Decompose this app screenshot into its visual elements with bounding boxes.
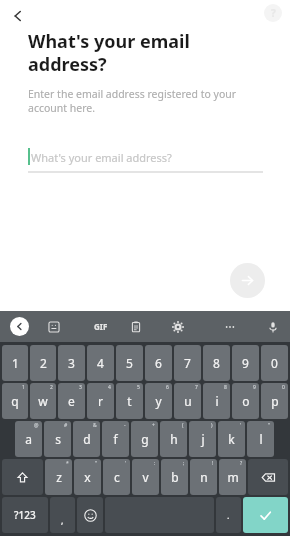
button[interactable]: Back (2, 0, 34, 32)
staticText: 6 (155, 355, 162, 371)
staticText: z (56, 469, 62, 485)
button[interactable]: n (190, 459, 217, 495)
button[interactable]: a (15, 421, 42, 457)
staticText: + (152, 422, 155, 429)
button[interactable]: j (189, 421, 216, 457)
button[interactable]: Close keyboard toolbar (10, 317, 29, 336)
button[interactable]: h (160, 421, 187, 457)
staticText: * (66, 460, 69, 467)
staticText: u (184, 393, 192, 409)
button[interactable]: More options (218, 311, 242, 342)
button[interactable]: m (219, 459, 246, 495)
button[interactable]: . (216, 497, 241, 533)
button[interactable]: r (87, 383, 114, 419)
button[interactable]: d (73, 421, 100, 457)
staticText: ? (271, 6, 276, 20)
button[interactable]: o (232, 383, 259, 419)
staticText: i (215, 393, 219, 409)
button[interactable]: z (45, 459, 72, 495)
staticText: f (113, 431, 118, 447)
button[interactable]: 5 (116, 345, 143, 381)
staticText: What's your email address? (31, 150, 172, 165)
button[interactable]: 8 (203, 345, 230, 381)
staticText: 1 (22, 384, 25, 391)
staticText: ' (125, 460, 127, 467)
staticText: l (259, 431, 263, 447)
staticText: s (55, 431, 61, 447)
staticText: ? (240, 460, 243, 467)
button[interactable]: 6 (145, 345, 172, 381)
button[interactable]: 3 (58, 345, 85, 381)
staticText: a (25, 431, 32, 447)
button[interactable]: v (132, 459, 159, 495)
button[interactable]: i (203, 383, 230, 419)
staticText: ) (211, 422, 213, 429)
staticText: 9 (242, 355, 249, 371)
button[interactable]: 7 (174, 345, 201, 381)
button[interactable]: f (102, 421, 129, 457)
staticText: g (141, 431, 149, 447)
staticText: b (171, 469, 179, 485)
staticText: 3 (68, 355, 75, 371)
staticText: e (68, 393, 75, 409)
button[interactable]: Settings (166, 311, 190, 342)
staticText: 8 (213, 355, 220, 371)
staticText: GIF (94, 321, 108, 332)
button[interactable]: GIF (88, 311, 114, 342)
staticText: ( (182, 422, 184, 429)
staticText: 6 (166, 384, 169, 391)
staticText: ; (183, 460, 185, 467)
button[interactable]: g (131, 421, 158, 457)
button[interactable]: p (261, 383, 288, 419)
staticText: # (64, 422, 68, 429)
staticText: 5 (126, 355, 133, 371)
staticText: ?123 (14, 508, 36, 522)
staticText: 0 (282, 384, 285, 391)
button[interactable]: l (247, 421, 274, 457)
staticText: 1 (12, 355, 19, 371)
staticText: j (201, 431, 205, 447)
staticText: @ (34, 422, 39, 429)
staticText: 4 (97, 355, 104, 371)
button[interactable]: Clipboard (124, 311, 148, 342)
button[interactable]: Stickers (42, 311, 66, 342)
button[interactable]: 2 (30, 345, 56, 381)
staticText: v (142, 469, 149, 485)
staticText: y (155, 393, 162, 409)
staticText: & (93, 422, 97, 429)
button[interactable]: b (161, 459, 188, 495)
button[interactable]: Voice input (261, 311, 285, 342)
staticText: o (242, 393, 250, 409)
button[interactable]: t (116, 383, 143, 419)
button[interactable]: q (2, 383, 28, 419)
button[interactable]: x (74, 459, 101, 495)
button[interactable]: ?123 (2, 497, 48, 533)
button[interactable]: s (44, 421, 71, 457)
button[interactable]: 0 (261, 345, 288, 381)
staticText: Enter the email address registered to yo… (28, 87, 250, 115)
button[interactable]: Shift (2, 459, 43, 495)
button[interactable]: 9 (232, 345, 259, 381)
button[interactable]: e (58, 383, 85, 419)
button[interactable]: w (30, 383, 56, 419)
button[interactable]: u (174, 383, 201, 419)
button[interactable]: Help (260, 0, 286, 26)
button[interactable]: Emoji (77, 497, 103, 533)
button[interactable]: , (50, 497, 75, 533)
button[interactable]: k (218, 421, 245, 457)
staticText: " (268, 422, 271, 429)
button[interactable]: 4 (87, 345, 114, 381)
button[interactable]: y (145, 383, 172, 419)
button[interactable]: Continue (230, 263, 265, 298)
staticText: 2 (40, 355, 47, 371)
button[interactable]: c (103, 459, 130, 495)
staticText: c (114, 469, 120, 485)
button[interactable]: Backspace (248, 459, 288, 495)
staticText: 0 (271, 355, 278, 371)
staticText: " (95, 460, 98, 467)
button[interactable]: Enter (243, 497, 288, 533)
button[interactable]: 1 (2, 345, 28, 381)
staticText: q (11, 393, 19, 409)
